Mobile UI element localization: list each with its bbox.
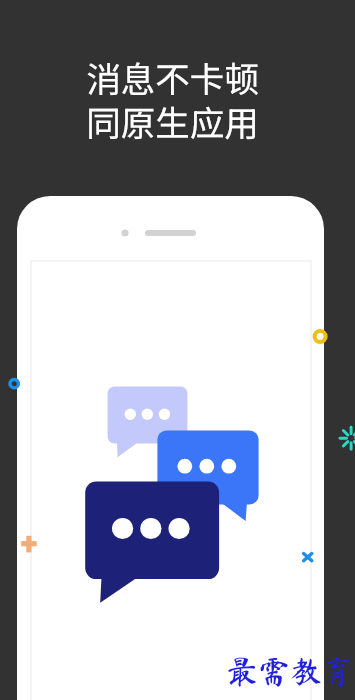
staticText: 消息不卡顿: [86, 52, 259, 102]
staticText: 同原生应用: [86, 96, 259, 146]
staticText: 最需教育: [226, 655, 355, 687]
button[interactable]: 最需教育: [226, 655, 355, 687]
button[interactable]: 消息不卡顿 同原生应用 预览: [0, 0, 355, 700]
